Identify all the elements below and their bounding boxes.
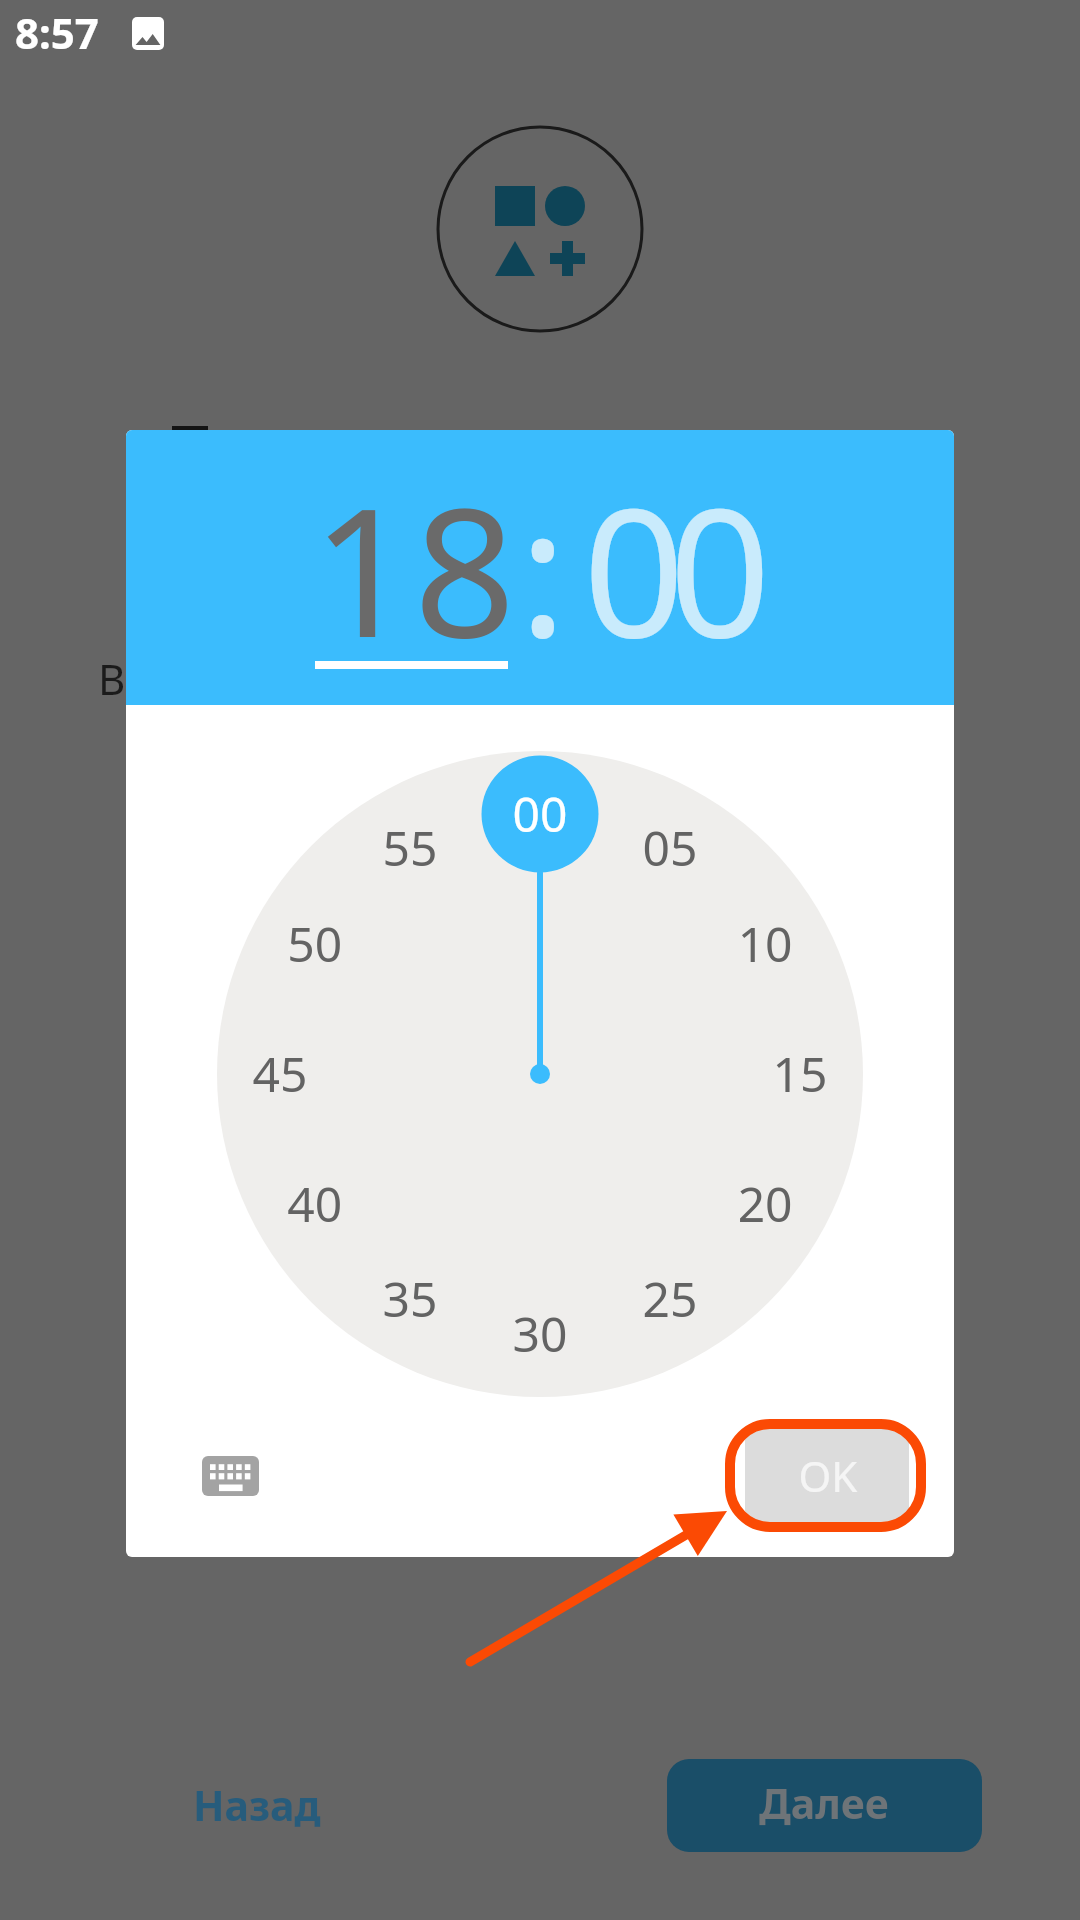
button[interactable]	[217, 751, 863, 1397]
button[interactable]	[126, 430, 954, 705]
button[interactable]	[745, 1428, 909, 1522]
button[interactable]	[185, 1770, 335, 1842]
button[interactable]	[190, 1444, 270, 1508]
button[interactable]	[667, 1759, 982, 1852]
